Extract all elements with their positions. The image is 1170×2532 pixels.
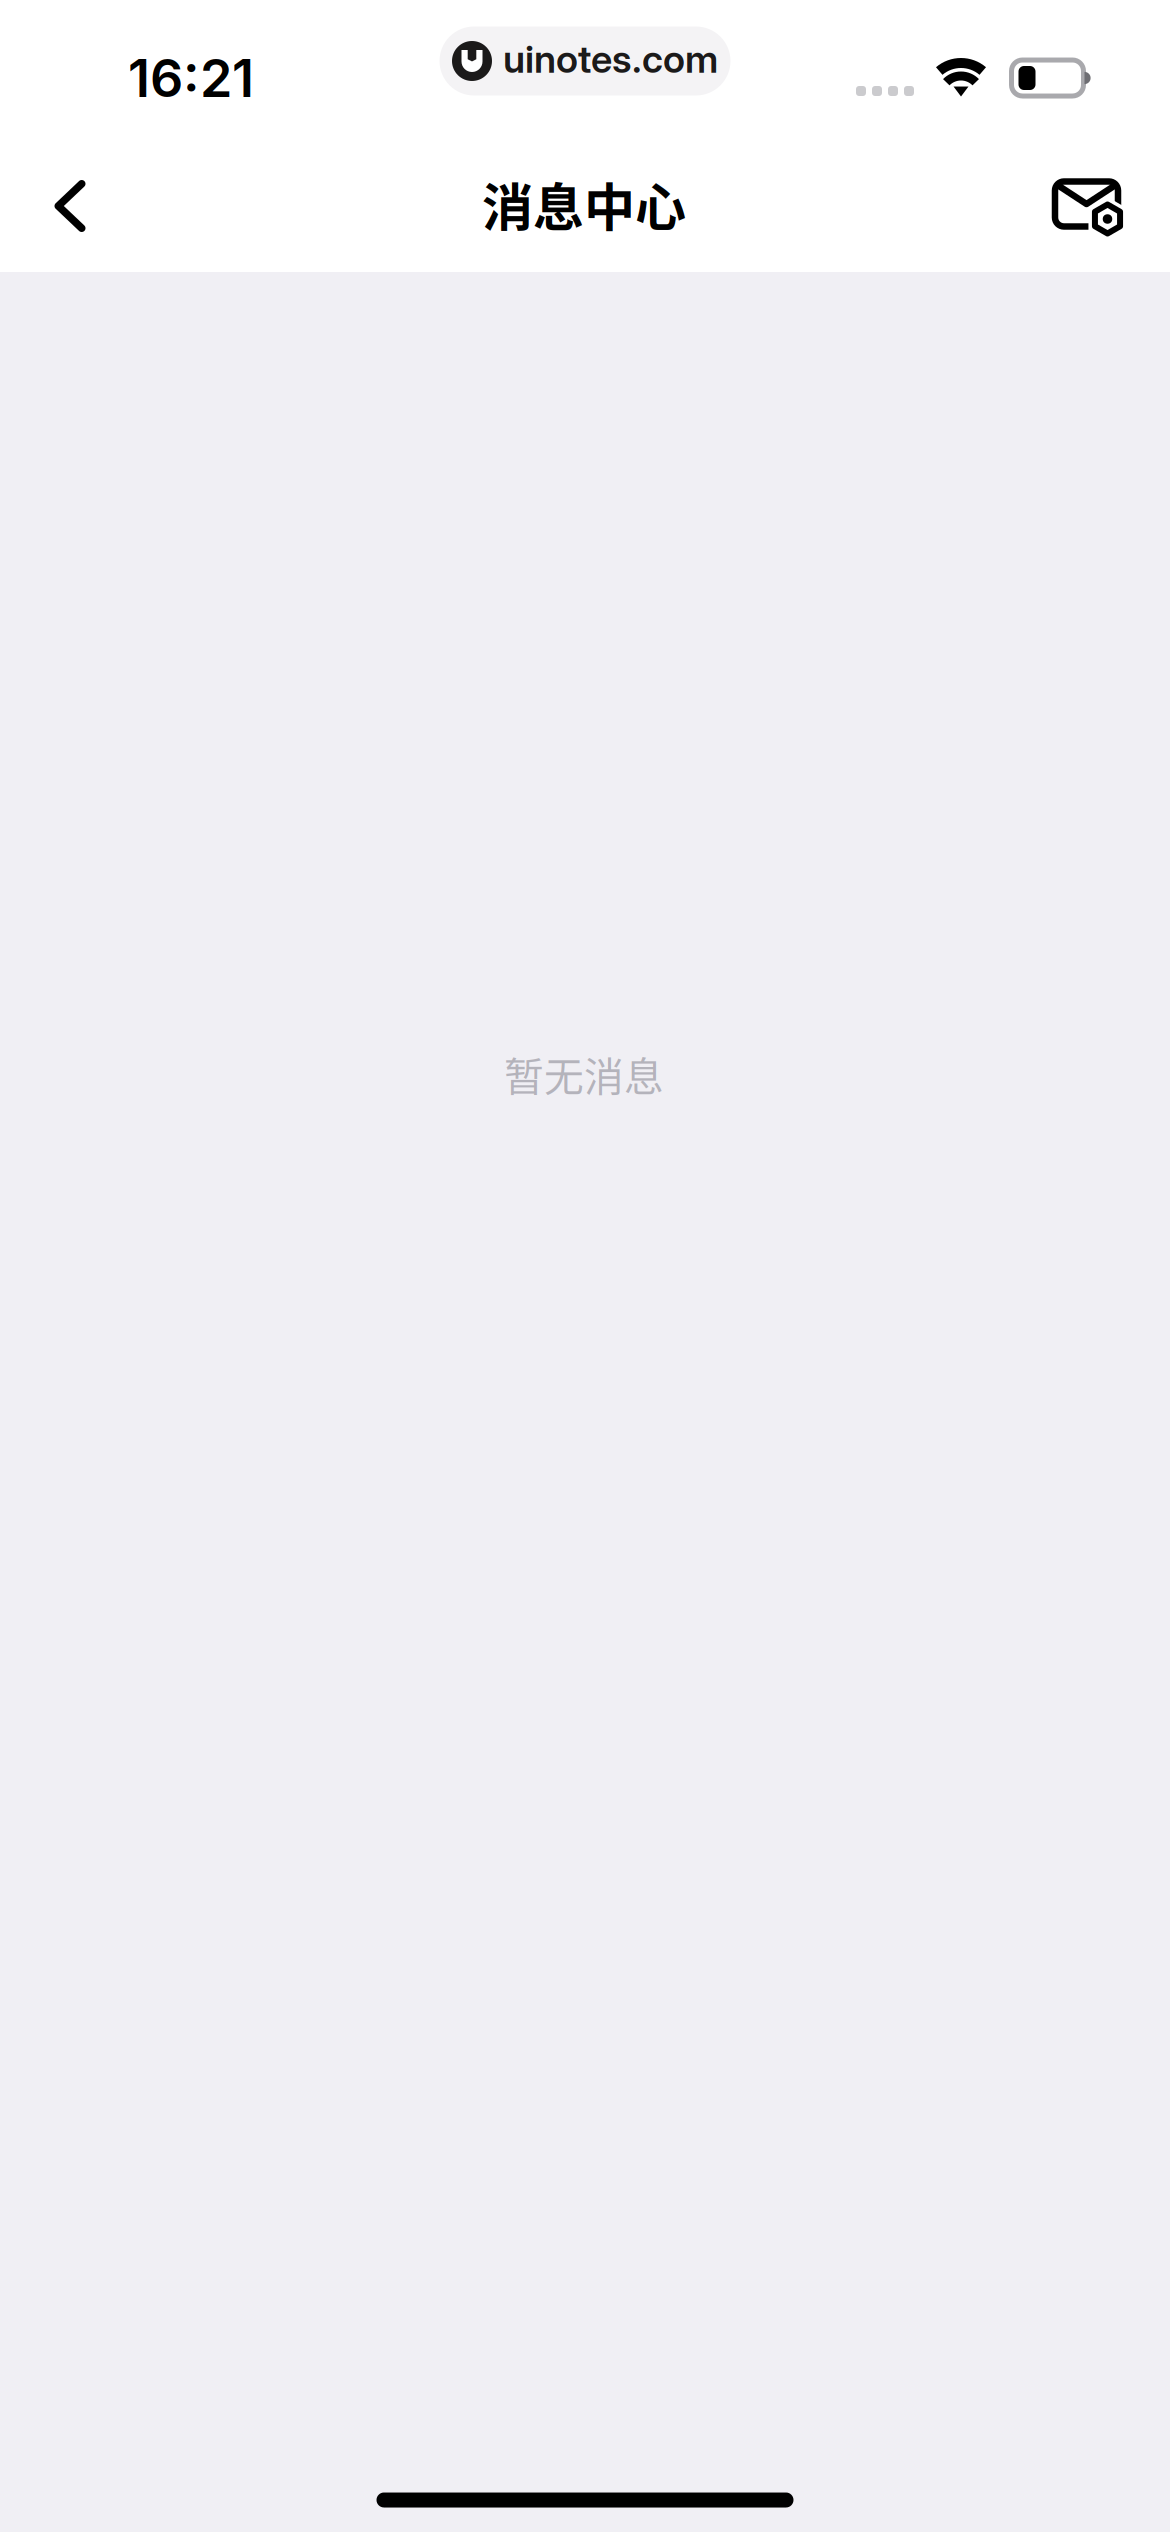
button[interactable]: 返回 <box>4 140 136 272</box>
button[interactable]: 消息设置 <box>1021 140 1153 272</box>
staticText: 消息中心 <box>482 167 686 241</box>
staticText: uinotes.com <box>503 36 718 82</box>
staticText: 暂无消息 <box>504 1045 664 1103</box>
staticText: 16:21 <box>128 46 254 109</box>
